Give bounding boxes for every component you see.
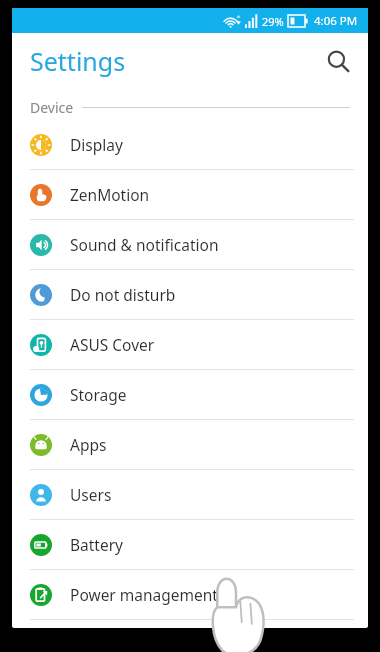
button[interactable]: Display: [12, 120, 368, 169]
staticText: Device: [30, 98, 74, 117]
staticText: Apps: [70, 434, 107, 455]
staticText: Users: [70, 484, 112, 505]
button[interactable]: Search: [316, 39, 360, 83]
staticText: 4:06 PM: [314, 13, 358, 29]
button[interactable]: ASUS Cover: [12, 320, 368, 369]
staticText: Storage: [70, 384, 127, 405]
staticText: ASUS Cover: [70, 334, 155, 355]
button[interactable]: ZenMotion: [12, 170, 368, 219]
button[interactable]: Battery: [12, 520, 368, 569]
staticText: 29%: [262, 14, 284, 29]
button[interactable]: Apps: [12, 420, 368, 469]
button[interactable]: Sound & notification: [12, 220, 368, 269]
button[interactable]: Do not disturb: [12, 270, 368, 319]
staticText: ZenMotion: [70, 184, 150, 205]
staticText: Sound & notification: [70, 234, 219, 255]
staticText: Power management: [70, 584, 218, 605]
button[interactable]: Power management: [12, 570, 368, 619]
button[interactable]: Storage: [12, 370, 368, 419]
button[interactable]: Users: [12, 470, 368, 519]
staticText: Settings: [30, 44, 126, 78]
staticText: Do not disturb: [70, 284, 176, 305]
staticText: Display: [70, 134, 123, 155]
staticText: Battery: [70, 534, 124, 555]
